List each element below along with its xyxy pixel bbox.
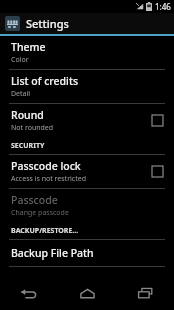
button[interactable]: List of credits: [0, 70, 174, 103]
staticText: Not rounded: [11, 123, 54, 133]
staticText: SECURITY: [11, 141, 45, 151]
staticText: 1:46: [155, 1, 171, 12]
button[interactable]: Home: [58, 276, 116, 310]
button[interactable]: Back: [0, 276, 58, 310]
staticText: Access is not restricted: [11, 174, 86, 184]
button[interactable]: Passcode: [0, 189, 174, 222]
button[interactable]: Recent apps: [116, 276, 174, 310]
button[interactable]: Settings: [0, 13, 174, 34]
staticText: Change passcode: [11, 208, 69, 218]
staticText: Settings: [26, 16, 69, 31]
button[interactable]: Round: [0, 104, 174, 137]
other: Toggle Round: [152, 115, 163, 126]
staticText: List of credits: [11, 74, 79, 88]
staticText: BACKUP/RESTORE…: [11, 226, 79, 236]
staticText: Passcode: [11, 193, 58, 207]
staticText: Passcode lock: [11, 159, 81, 173]
button[interactable]: Backup File Path: [0, 240, 174, 266]
staticText: Round: [11, 108, 44, 122]
staticText: Color: [11, 55, 29, 65]
staticText: Backup File Path: [11, 246, 94, 260]
other: Toggle Passcode lock: [152, 166, 163, 177]
staticText: Theme: [11, 40, 46, 54]
staticText: Detail: [11, 89, 31, 99]
button[interactable]: Passcode lock: [0, 155, 174, 188]
button[interactable]: Theme: [0, 36, 174, 69]
